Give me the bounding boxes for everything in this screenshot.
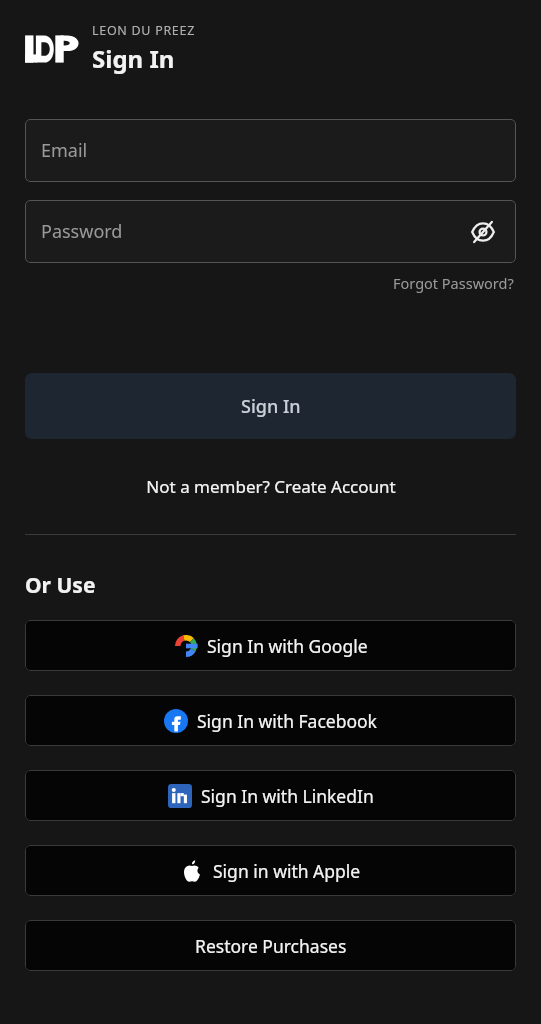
button[interactable]: Show password bbox=[466, 215, 500, 249]
staticText: Or Use bbox=[25, 571, 96, 600]
staticText: Email bbox=[41, 138, 88, 163]
staticText: LEON DU PREEZ bbox=[92, 22, 196, 39]
staticText: Sign In bbox=[241, 394, 301, 419]
button[interactable]: Email bbox=[25, 119, 516, 182]
staticText: Sign In with LinkedIn bbox=[201, 784, 374, 808]
button[interactable]: Sign In with Google bbox=[25, 620, 516, 671]
button[interactable]: Sign In with Facebook bbox=[25, 695, 516, 746]
staticText: Password bbox=[41, 219, 123, 244]
staticText: Sign In with Facebook bbox=[197, 709, 377, 733]
other: LDP logo bbox=[24, 32, 78, 66]
button[interactable]: Sign In bbox=[25, 373, 516, 439]
staticText: Sign in with Apple bbox=[213, 859, 361, 883]
button[interactable]: Sign In with LinkedIn bbox=[25, 770, 516, 821]
staticText: Not a member? Create Account bbox=[146, 475, 396, 498]
button[interactable]: Not a member? Create Account bbox=[0, 471, 541, 502]
staticText: Forgot Password? bbox=[393, 273, 514, 293]
button[interactable]: Sign in with Apple bbox=[25, 845, 516, 896]
staticText: Restore Purchases bbox=[195, 934, 347, 958]
button[interactable]: Forgot Password? bbox=[391, 271, 516, 295]
button[interactable]: Restore Purchases bbox=[25, 920, 516, 971]
button[interactable]: Password bbox=[25, 200, 516, 263]
staticText: Sign In with Google bbox=[207, 634, 368, 658]
staticText: Sign In bbox=[92, 42, 175, 75]
